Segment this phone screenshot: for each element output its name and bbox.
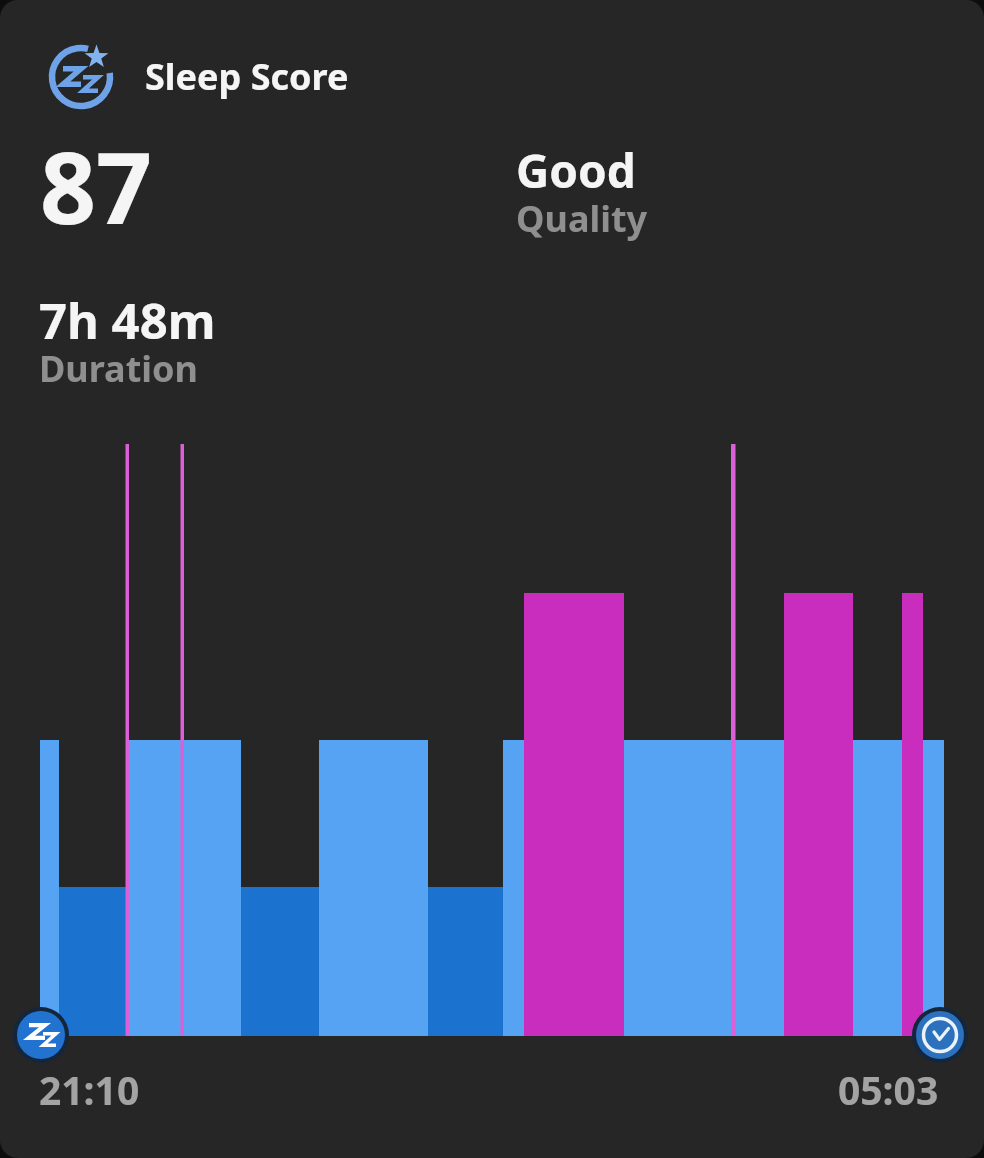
staticText: 05:03: [838, 1063, 939, 1116]
staticText: Good: [516, 139, 636, 202]
staticText: 7h 48m: [39, 287, 216, 354]
staticText: Quality: [516, 194, 648, 243]
button[interactable]: Sleep Score: [0, 0, 984, 1158]
staticText: 87: [40, 119, 153, 252]
staticText: 21:10: [39, 1063, 140, 1116]
staticText: Duration: [39, 344, 198, 393]
staticText: Sleep Score: [145, 52, 349, 101]
